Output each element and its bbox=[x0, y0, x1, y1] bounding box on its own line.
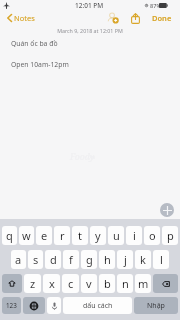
button[interactable]: Shift bbox=[2, 274, 22, 293]
button[interactable]: w bbox=[19, 226, 34, 245]
staticText: z bbox=[30, 276, 36, 291]
button[interactable]: m bbox=[135, 274, 151, 293]
staticText: y bbox=[95, 228, 101, 243]
staticText: e bbox=[41, 228, 48, 243]
staticText: g bbox=[86, 252, 93, 267]
button[interactable]: Dictation bbox=[47, 297, 61, 314]
button[interactable]: g bbox=[81, 250, 97, 269]
button[interactable]: Add attachment bbox=[160, 203, 174, 217]
staticText: u bbox=[113, 228, 120, 243]
staticText: n bbox=[122, 276, 129, 291]
button[interactable]: n bbox=[117, 274, 133, 293]
button[interactable]: j bbox=[117, 250, 133, 269]
button[interactable]: a bbox=[11, 250, 26, 269]
staticText: f bbox=[69, 252, 73, 267]
staticText: v bbox=[86, 276, 92, 291]
button[interactable]: h bbox=[99, 250, 115, 269]
staticText: j bbox=[124, 252, 127, 267]
button[interactable]: o bbox=[144, 226, 160, 245]
button[interactable]: Nhập bbox=[134, 297, 178, 314]
staticText: d bbox=[50, 252, 57, 267]
button[interactable]: d bbox=[45, 250, 61, 269]
button[interactable]: z bbox=[24, 274, 41, 293]
staticText: Quán ốc ba đồ bbox=[11, 39, 58, 48]
staticText: c bbox=[68, 276, 74, 291]
button[interactable]: l bbox=[153, 250, 169, 269]
staticText: March 9, 2018 at 12:01 PM bbox=[0, 27, 180, 34]
staticText: Nhập bbox=[147, 301, 165, 311]
staticText: Done bbox=[152, 13, 172, 23]
staticText: m bbox=[138, 276, 149, 291]
staticText: s bbox=[33, 252, 39, 267]
button[interactable]: p bbox=[162, 226, 178, 245]
button[interactable]: v bbox=[81, 274, 97, 293]
button[interactable]: dấu cách bbox=[63, 297, 132, 314]
button[interactable]: f bbox=[63, 250, 79, 269]
staticText: k bbox=[140, 252, 146, 267]
button[interactable]: Backspace bbox=[153, 274, 178, 293]
button[interactable]: e bbox=[36, 226, 52, 245]
staticText: o bbox=[149, 228, 156, 243]
staticText: p bbox=[167, 228, 174, 243]
staticText: 87% bbox=[150, 2, 162, 10]
button[interactable]: y bbox=[90, 226, 106, 245]
staticText: l bbox=[160, 252, 163, 267]
button[interactable]: t bbox=[72, 226, 88, 245]
staticText: a bbox=[15, 252, 22, 267]
staticText: q bbox=[6, 228, 13, 243]
staticText: Open 10am-12pm bbox=[11, 60, 69, 69]
button[interactable]: 123 bbox=[2, 297, 21, 314]
button[interactable]: Notes bbox=[0, 13, 39, 23]
staticText: Notes bbox=[14, 13, 35, 23]
button[interactable]: i bbox=[126, 226, 142, 245]
button[interactable]: r bbox=[54, 226, 70, 245]
button[interactable]: s bbox=[28, 250, 43, 269]
staticText: 12:01 PM bbox=[75, 1, 104, 10]
button[interactable]: Add people bbox=[104, 10, 121, 26]
staticText: r bbox=[60, 228, 65, 243]
button[interactable]: b bbox=[99, 274, 115, 293]
button[interactable]: Share bbox=[127, 10, 143, 26]
button[interactable]: u bbox=[108, 226, 124, 245]
button[interactable]: Switch keyboard bbox=[23, 297, 45, 314]
button[interactable]: x bbox=[43, 274, 60, 293]
button[interactable]: c bbox=[62, 274, 79, 293]
staticText: 123 bbox=[6, 301, 17, 310]
button[interactable]: q bbox=[2, 226, 17, 245]
staticText: w bbox=[22, 228, 31, 243]
button[interactable]: Done bbox=[149, 10, 175, 26]
button[interactable]: k bbox=[135, 250, 151, 269]
staticText: i bbox=[133, 228, 136, 243]
staticText: h bbox=[104, 252, 111, 267]
staticText: b bbox=[104, 276, 111, 291]
staticText: dấu cách bbox=[83, 301, 113, 311]
staticText: t bbox=[78, 228, 82, 243]
staticText: x bbox=[49, 276, 55, 291]
